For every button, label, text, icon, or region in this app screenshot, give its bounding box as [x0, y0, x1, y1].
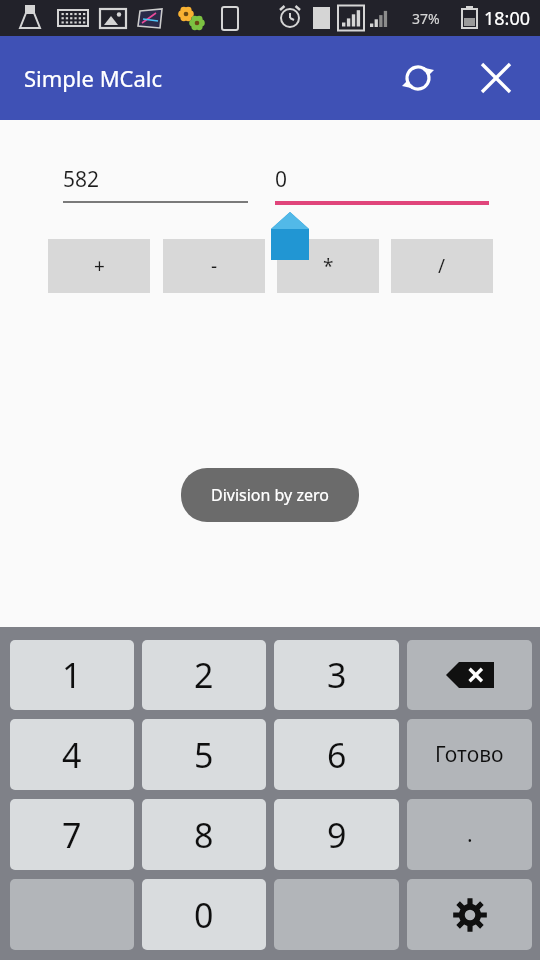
- button[interactable]: 9: [274, 799, 399, 870]
- staticText: Division by zero: [211, 484, 329, 506]
- button[interactable]: 0: [142, 879, 266, 950]
- staticText: -: [211, 253, 218, 279]
- staticText: Готово: [435, 740, 504, 769]
- button[interactable]: Backspace: [407, 640, 532, 710]
- button[interactable]: *: [277, 239, 379, 293]
- button[interactable]: 7: [10, 799, 134, 870]
- staticText: 37%: [412, 9, 440, 28]
- staticText: 18:00: [484, 6, 531, 31]
- staticText: 0: [275, 165, 288, 194]
- staticText: .: [467, 820, 473, 849]
- button[interactable]: 1: [10, 640, 134, 710]
- staticText: /: [438, 253, 446, 279]
- button[interactable]: /: [391, 239, 493, 293]
- staticText: 9: [327, 812, 347, 858]
- button[interactable]: 5: [142, 719, 266, 790]
- staticText: 4: [62, 732, 82, 778]
- staticText: 3: [327, 652, 347, 698]
- button[interactable]: +: [48, 239, 150, 293]
- button[interactable]: 2: [142, 640, 266, 710]
- button[interactable]: Готово: [407, 719, 532, 790]
- button[interactable]: Close: [468, 50, 524, 106]
- staticText: 582: [63, 165, 100, 194]
- button[interactable]: Settings: [407, 879, 532, 950]
- button[interactable]: 6: [274, 719, 399, 790]
- button[interactable]: -: [163, 239, 265, 293]
- staticText: 5: [194, 732, 214, 778]
- staticText: Simple MCalc: [24, 63, 163, 93]
- button[interactable]: Division by zero: [211, 484, 329, 506]
- staticText: 2: [194, 652, 214, 698]
- staticText: 7: [62, 812, 82, 858]
- staticText: 1: [62, 652, 82, 698]
- button[interactable]: 8: [142, 799, 266, 870]
- staticText: +: [94, 253, 105, 279]
- button[interactable]: 0: [275, 165, 489, 205]
- staticText: 6: [327, 732, 347, 778]
- staticText: 8: [194, 812, 214, 858]
- button[interactable]: 3: [274, 640, 399, 710]
- button[interactable]: 4: [10, 719, 134, 790]
- button[interactable]: Refresh: [390, 50, 446, 106]
- staticText: *: [323, 253, 334, 279]
- button[interactable]: .: [407, 799, 532, 870]
- button[interactable]: 582: [63, 165, 248, 203]
- staticText: 0: [194, 892, 214, 938]
